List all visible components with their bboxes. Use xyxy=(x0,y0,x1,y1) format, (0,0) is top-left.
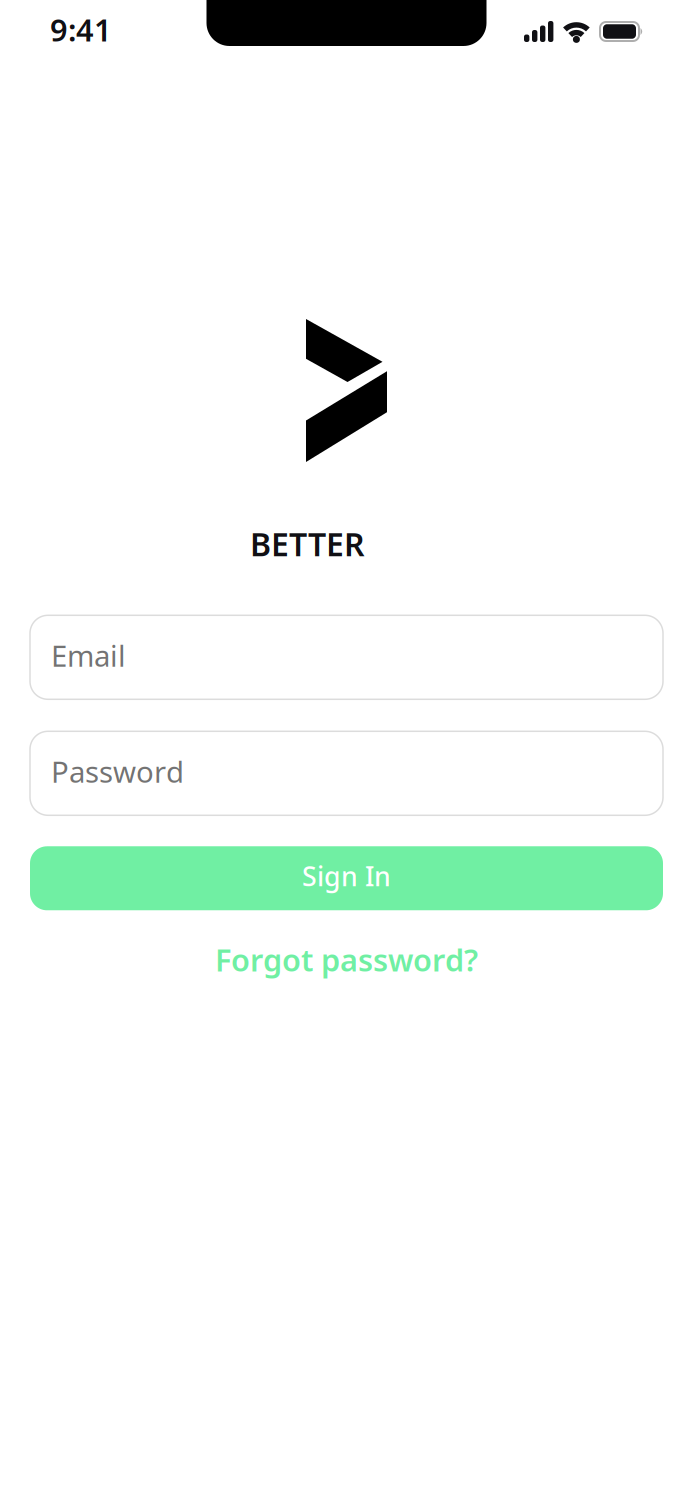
staticText: Forgot password? xyxy=(215,939,478,980)
staticText: Email xyxy=(51,636,126,675)
button[interactable]: Forgot password? xyxy=(195,930,498,989)
button[interactable]: Email xyxy=(30,615,663,699)
staticText: Sign In xyxy=(302,858,391,893)
button[interactable]: Sign In xyxy=(30,846,663,910)
staticText: 9:41 xyxy=(50,9,112,50)
staticText: Password xyxy=(51,752,184,791)
button[interactable]: Password xyxy=(30,731,663,815)
staticText: BETTER xyxy=(250,522,365,565)
